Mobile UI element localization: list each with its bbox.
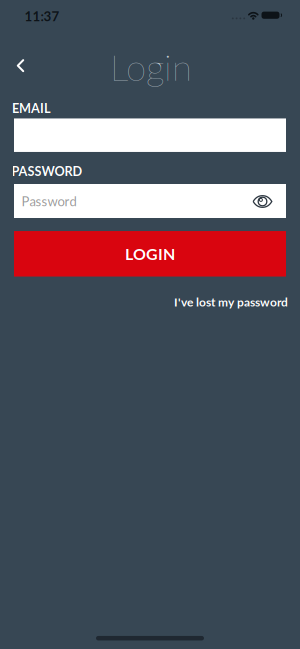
staticText: EMAIL	[12, 100, 51, 116]
staticText: I've lost my password	[174, 295, 288, 309]
button[interactable]: Email	[14, 118, 286, 152]
staticText: Password	[21, 193, 76, 209]
button[interactable]: Password	[14, 184, 286, 218]
staticText: PASSWORD	[11, 163, 82, 179]
button[interactable]: LOGIN	[14, 231, 286, 277]
button[interactable]: Back	[2, 45, 38, 85]
button[interactable]: I've lost my password	[174, 295, 288, 309]
staticText: Login	[110, 44, 192, 88]
staticText: LOGIN	[125, 244, 175, 263]
staticText: 11:37	[24, 8, 59, 24]
button[interactable]: Show password	[247, 190, 278, 213]
